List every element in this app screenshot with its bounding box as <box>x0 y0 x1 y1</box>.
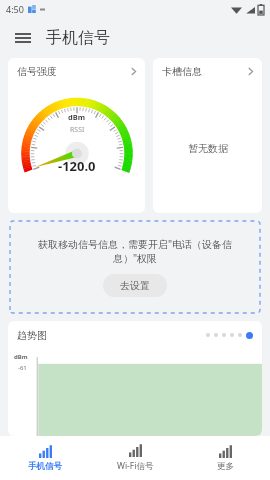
staticText: -120.0 <box>58 157 96 175</box>
staticText: 暂无数据 <box>188 142 228 155</box>
staticText: 更多 <box>217 461 234 472</box>
staticText: 获取移动信号信息，需要开启"电话（设备信息）"权限 <box>22 237 248 265</box>
button[interactable]: Wi-Fi信号 <box>90 436 180 480</box>
staticText: 手机信号 <box>28 461 62 472</box>
staticText: Wi-Fi信号 <box>117 460 154 472</box>
staticText: 信号强度 <box>17 65 57 78</box>
staticText: 手机信号 <box>46 28 110 48</box>
button[interactable]: 更多 <box>180 436 270 480</box>
staticText: 4:50 <box>6 3 24 15</box>
button[interactable]: Info <box>246 332 253 339</box>
staticText: RSSI <box>70 125 85 135</box>
staticText: -61 <box>18 364 27 372</box>
button[interactable]: 趋势图 <box>8 321 262 436</box>
staticText: dBm <box>68 112 86 122</box>
button[interactable]: Menu <box>8 23 38 53</box>
staticText: 趋势图 <box>17 329 47 342</box>
button[interactable]: 卡槽信息 <box>153 58 262 213</box>
button[interactable]: 信号强度 <box>8 58 145 213</box>
staticText: dBm <box>14 353 28 361</box>
staticText: 卡槽信息 <box>162 65 202 78</box>
staticText: 去设置 <box>120 279 150 292</box>
button[interactable]: 手机信号 <box>0 436 90 480</box>
button[interactable]: 去设置 <box>103 274 167 297</box>
